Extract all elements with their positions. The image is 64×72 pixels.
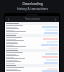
staticText: Downloading	[22, 2, 43, 6]
button[interactable]: Back	[5, 16, 59, 22]
button[interactable]	[5, 31, 59, 34]
staticText: history & transactions	[17, 7, 48, 11]
button[interactable]	[5, 43, 59, 46]
button[interactable]	[5, 34, 59, 37]
staticText: Transactions	[11, 17, 54, 21]
button[interactable]	[5, 46, 59, 49]
button[interactable]	[5, 55, 59, 58]
button[interactable]	[5, 40, 59, 43]
button[interactable]	[5, 52, 59, 55]
button[interactable]: More options	[54, 18, 57, 21]
button[interactable]: Back	[7, 18, 10, 21]
button[interactable]	[5, 58, 59, 61]
button[interactable]	[5, 37, 59, 40]
button[interactable]	[5, 25, 59, 28]
button[interactable]	[5, 22, 59, 25]
button[interactable]	[5, 61, 59, 64]
button[interactable]	[5, 28, 59, 31]
button[interactable]	[5, 64, 59, 67]
button[interactable]	[5, 49, 59, 52]
button[interactable]	[5, 67, 59, 70]
button[interactable]	[5, 70, 59, 72]
button[interactable]: Downloading	[0, 2, 64, 11]
button[interactable]: Back	[4, 13, 60, 72]
